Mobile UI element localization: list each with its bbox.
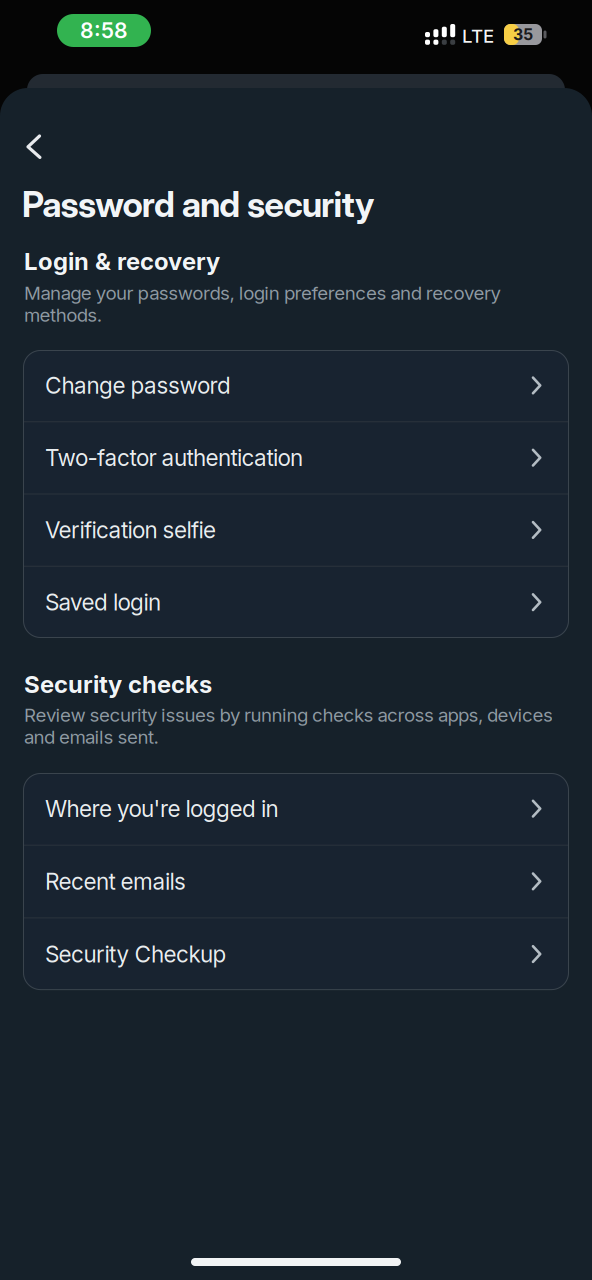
staticText: Security Checkup (45, 941, 226, 968)
staticText: Recent emails (45, 868, 186, 895)
staticText: Login & recovery (24, 247, 220, 275)
staticText: Verification selfie (45, 517, 216, 543)
button[interactable]: Security Checkup (23, 918, 569, 990)
staticText: Where you're logged in (45, 795, 278, 822)
staticText: Change password (45, 372, 231, 399)
button[interactable]: Where you're logged in (23, 773, 569, 845)
button[interactable]: Verification selfie (23, 494, 569, 566)
staticText: 8:58 (80, 18, 128, 43)
staticText: LTE (462, 25, 494, 47)
staticText: 35 (513, 25, 533, 44)
button[interactable]: Saved login (23, 567, 569, 638)
button[interactable]: Two-factor authentication (23, 422, 569, 493)
staticText: Saved login (45, 589, 161, 616)
staticText: Two-factor authentication (45, 444, 303, 471)
button[interactable]: Recent emails (23, 846, 569, 917)
button[interactable]: Back (18, 126, 50, 168)
button[interactable]: Change password (23, 350, 569, 421)
staticText: Security checks (24, 670, 212, 698)
staticText: Password and security (22, 183, 374, 225)
staticText: Review security issues by running checks… (24, 704, 553, 748)
staticText: Manage your passwords, login preferences… (24, 282, 501, 326)
